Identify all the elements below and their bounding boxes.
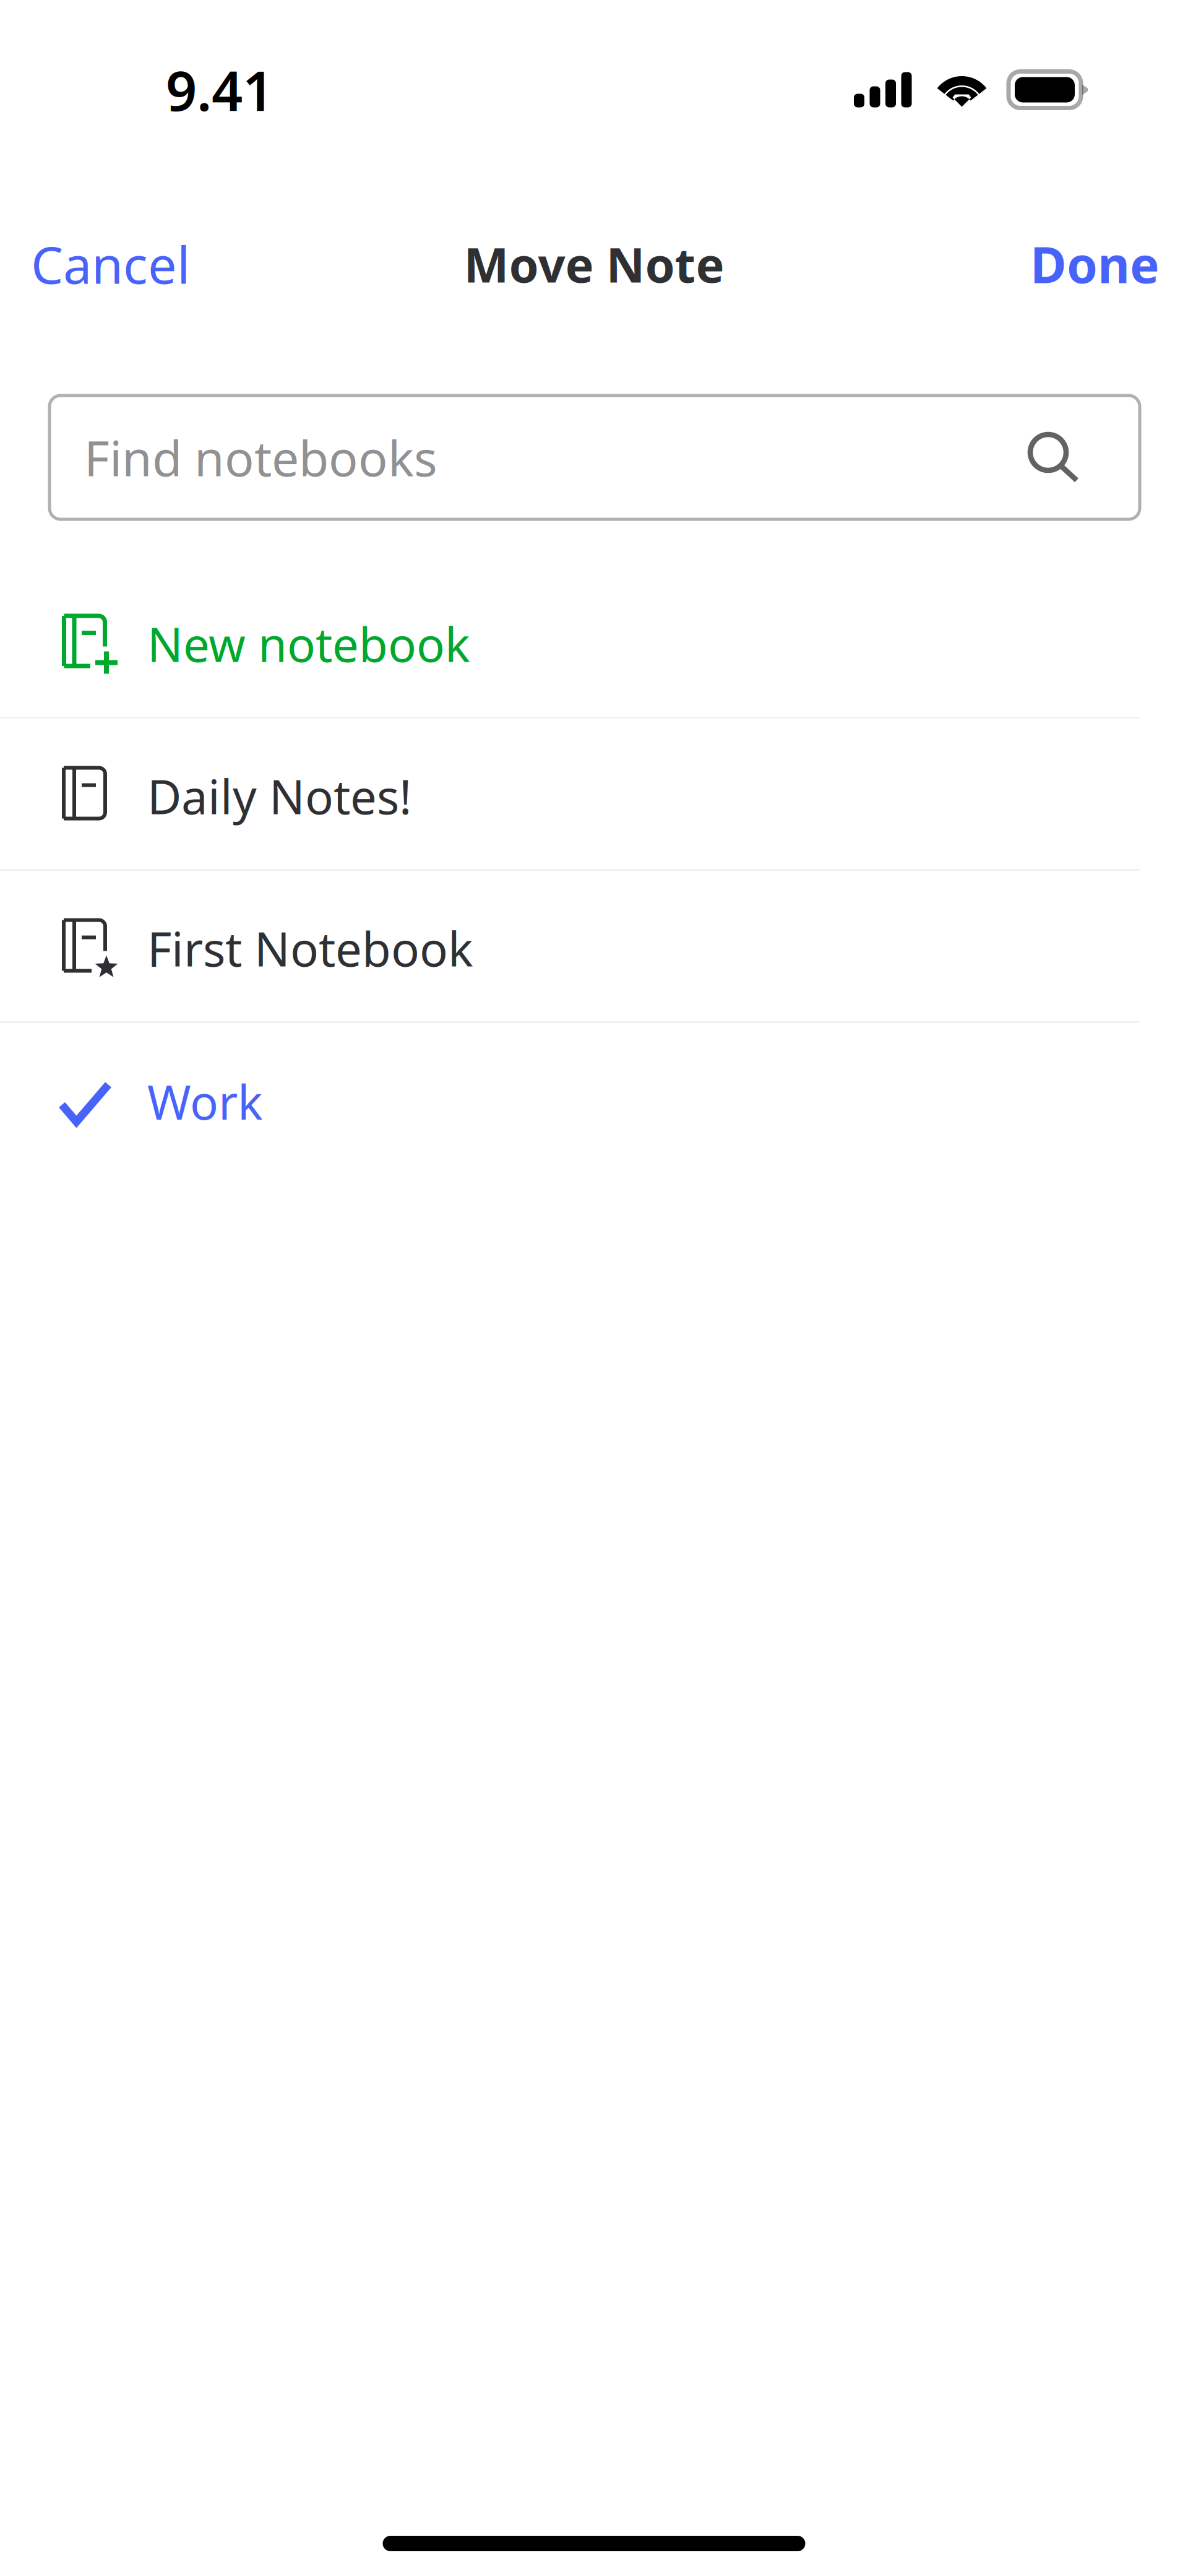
staticText: First Notebook: [147, 917, 473, 979]
button[interactable]: New notebook: [0, 566, 1188, 719]
button[interactable]: Daily Notes!: [0, 719, 1188, 871]
staticText: Work: [147, 1070, 263, 1133]
staticText: Done: [1030, 231, 1160, 297]
button[interactable]: Done: [1022, 218, 1168, 310]
staticText: Find notebooks: [84, 425, 437, 490]
button[interactable]: First Notebook: [0, 871, 1188, 1023]
staticText: Cancel: [31, 230, 190, 298]
staticText: New notebook: [147, 612, 470, 675]
button[interactable]: Work: [0, 1023, 1188, 1175]
button[interactable]: Cancel: [22, 218, 199, 310]
staticText: Daily Notes!: [147, 765, 411, 827]
staticText: Move Note: [464, 232, 724, 296]
staticText: 9.41: [166, 54, 273, 126]
button[interactable]: Find notebooks: [49, 395, 1140, 519]
